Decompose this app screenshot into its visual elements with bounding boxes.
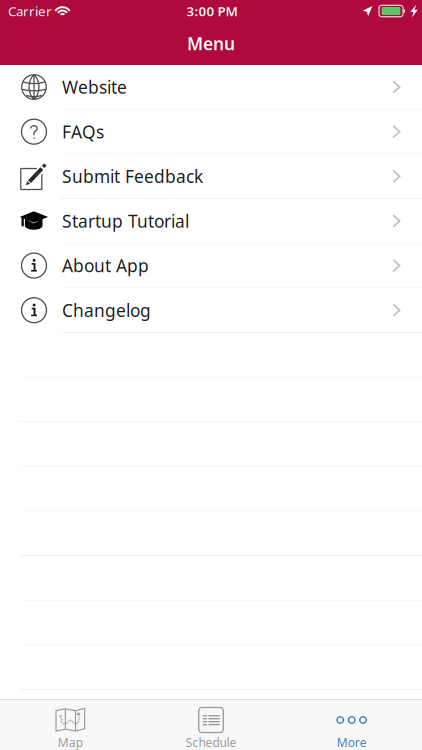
staticText: Website (62, 75, 127, 98)
button[interactable]: Schedule (141, 700, 281, 750)
staticText: Changelog (62, 299, 151, 322)
staticText: Menu (187, 32, 235, 55)
staticText: Schedule (185, 734, 236, 750)
button[interactable]: About App (0, 244, 422, 288)
button[interactable]: Submit Feedback (0, 154, 422, 199)
staticText: FAQs (62, 120, 104, 143)
button[interactable]: More (281, 700, 422, 750)
staticText: Carrier (8, 2, 52, 20)
staticText: Map (58, 734, 83, 750)
button[interactable]: Changelog (0, 288, 422, 333)
staticText: Submit Feedback (62, 165, 203, 188)
button[interactable]: Website (0, 65, 422, 110)
staticText: About App (62, 254, 149, 277)
button[interactable]: Startup Tutorial (0, 199, 422, 243)
staticText: More (337, 734, 367, 750)
staticText: 3:00 PM (186, 2, 237, 20)
staticText: Startup Tutorial (62, 209, 189, 232)
button[interactable]: Map (0, 700, 141, 750)
button[interactable]: FAQs (0, 110, 422, 154)
